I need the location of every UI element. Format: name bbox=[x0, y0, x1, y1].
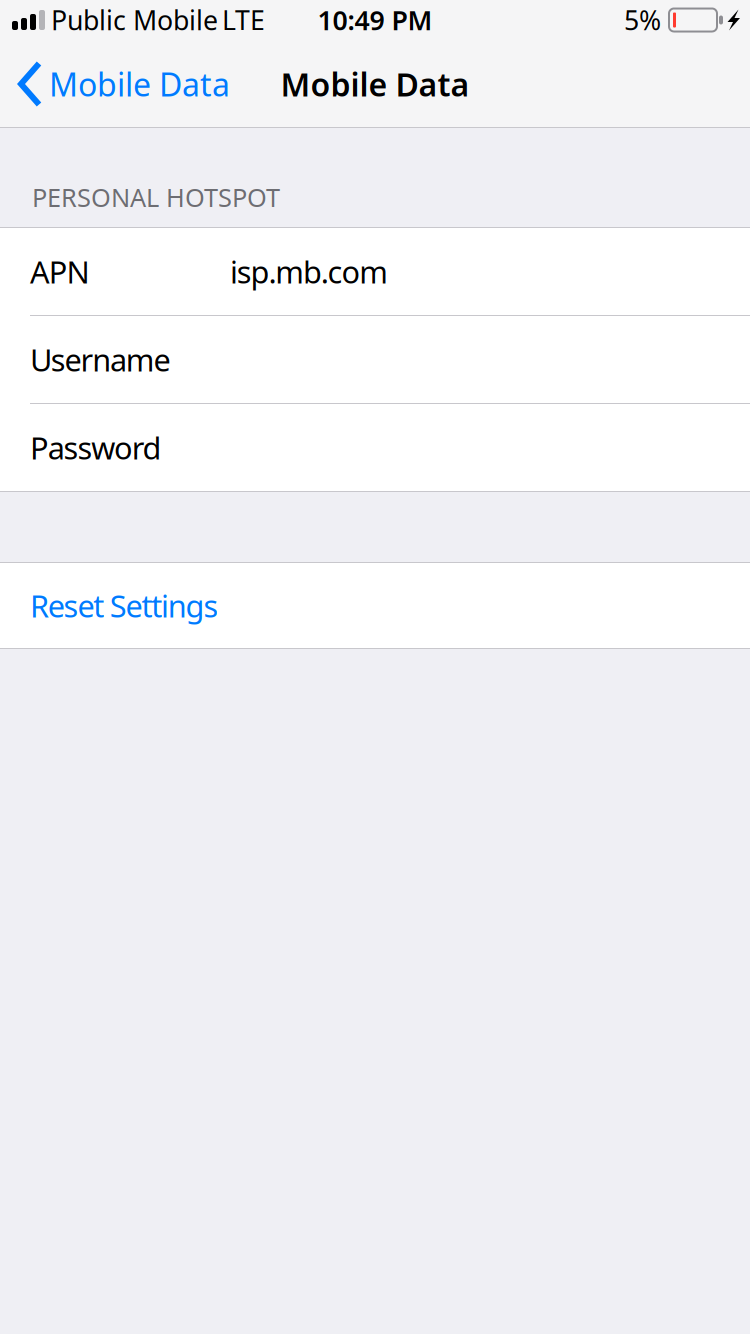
staticText: Mobile Data bbox=[49, 63, 230, 105]
staticText: PERSONAL HOTSPOT bbox=[32, 180, 280, 214]
staticText: 5% bbox=[624, 2, 661, 38]
button[interactable]: Mobile Data bbox=[0, 40, 242, 128]
button[interactable]: APN bbox=[0, 228, 750, 315]
button[interactable]: Password bbox=[0, 404, 750, 491]
button[interactable]: Username bbox=[0, 316, 750, 403]
staticText: Mobile Data bbox=[280, 63, 469, 105]
staticText: Username bbox=[30, 339, 171, 380]
staticText: LTE bbox=[222, 2, 265, 38]
staticText: Reset Settings bbox=[30, 585, 218, 626]
staticText: Public Mobile bbox=[51, 2, 218, 38]
staticText: APN bbox=[30, 251, 90, 292]
staticText: isp.mb.com bbox=[230, 251, 388, 292]
button[interactable]: Reset Settings bbox=[0, 563, 750, 648]
staticText: 10:49 PM bbox=[317, 2, 432, 38]
staticText: Password bbox=[30, 427, 162, 468]
